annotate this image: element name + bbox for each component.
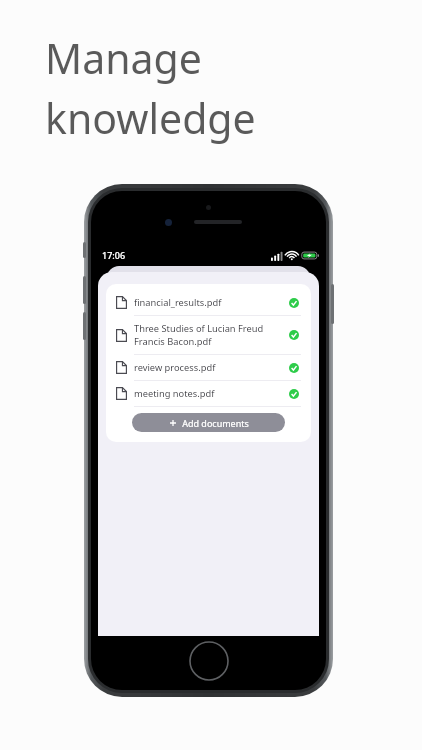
- button[interactable]: meeting notes.pdf: [116, 381, 301, 406]
- staticText: Add documents: [182, 417, 249, 429]
- button[interactable]: review process.pdf: [116, 355, 301, 380]
- button[interactable]: Add documents: [132, 413, 285, 432]
- staticText: Three Studies of Lucian Freud: [134, 322, 264, 335]
- staticText: Manage: [45, 30, 202, 86]
- staticText: knowledge: [45, 90, 256, 146]
- button[interactable]: Three Studies of Lucian Freud: [116, 316, 301, 354]
- staticText: 17:06: [102, 249, 126, 261]
- staticText: financial_results.pdf: [134, 296, 222, 309]
- button[interactable]: financial_results.pdf: [116, 290, 301, 315]
- staticText: review process.pdf: [134, 361, 216, 374]
- staticText: Francis Bacon.pdf: [134, 335, 212, 348]
- staticText: meeting notes.pdf: [134, 387, 215, 400]
